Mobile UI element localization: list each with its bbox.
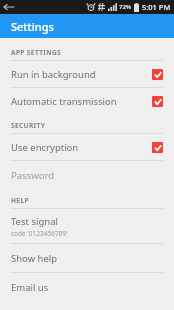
staticText: SECURITY [11, 121, 46, 130]
staticText: APP SETTINGS [11, 48, 62, 57]
staticText: Show help [11, 252, 58, 265]
staticText: Automatic transmission [11, 95, 152, 108]
other: Checked [152, 69, 163, 80]
other: Checked [152, 96, 163, 107]
button[interactable]: Email us [0, 273, 174, 301]
staticText: Email us [11, 281, 49, 294]
staticText: Use encryption [11, 141, 152, 154]
staticText: Test signal [11, 215, 58, 228]
button[interactable]: Run in background [0, 61, 174, 87]
button[interactable]: Show help [0, 244, 174, 272]
button[interactable]: Test signal [0, 209, 174, 243]
staticText: 5:01 PM [142, 2, 171, 12]
staticText: Settings [11, 19, 54, 34]
staticText: HELP [11, 196, 29, 205]
staticText: 72% [119, 3, 132, 11]
staticText: code '0123456789' [11, 229, 68, 238]
button[interactable]: Password [0, 161, 174, 189]
button[interactable]: Automatic transmission [0, 88, 174, 114]
other: Checked [152, 142, 163, 153]
staticText: Password [11, 169, 54, 182]
staticText: Run in background [11, 68, 152, 81]
button[interactable]: Use encryption [0, 134, 174, 160]
